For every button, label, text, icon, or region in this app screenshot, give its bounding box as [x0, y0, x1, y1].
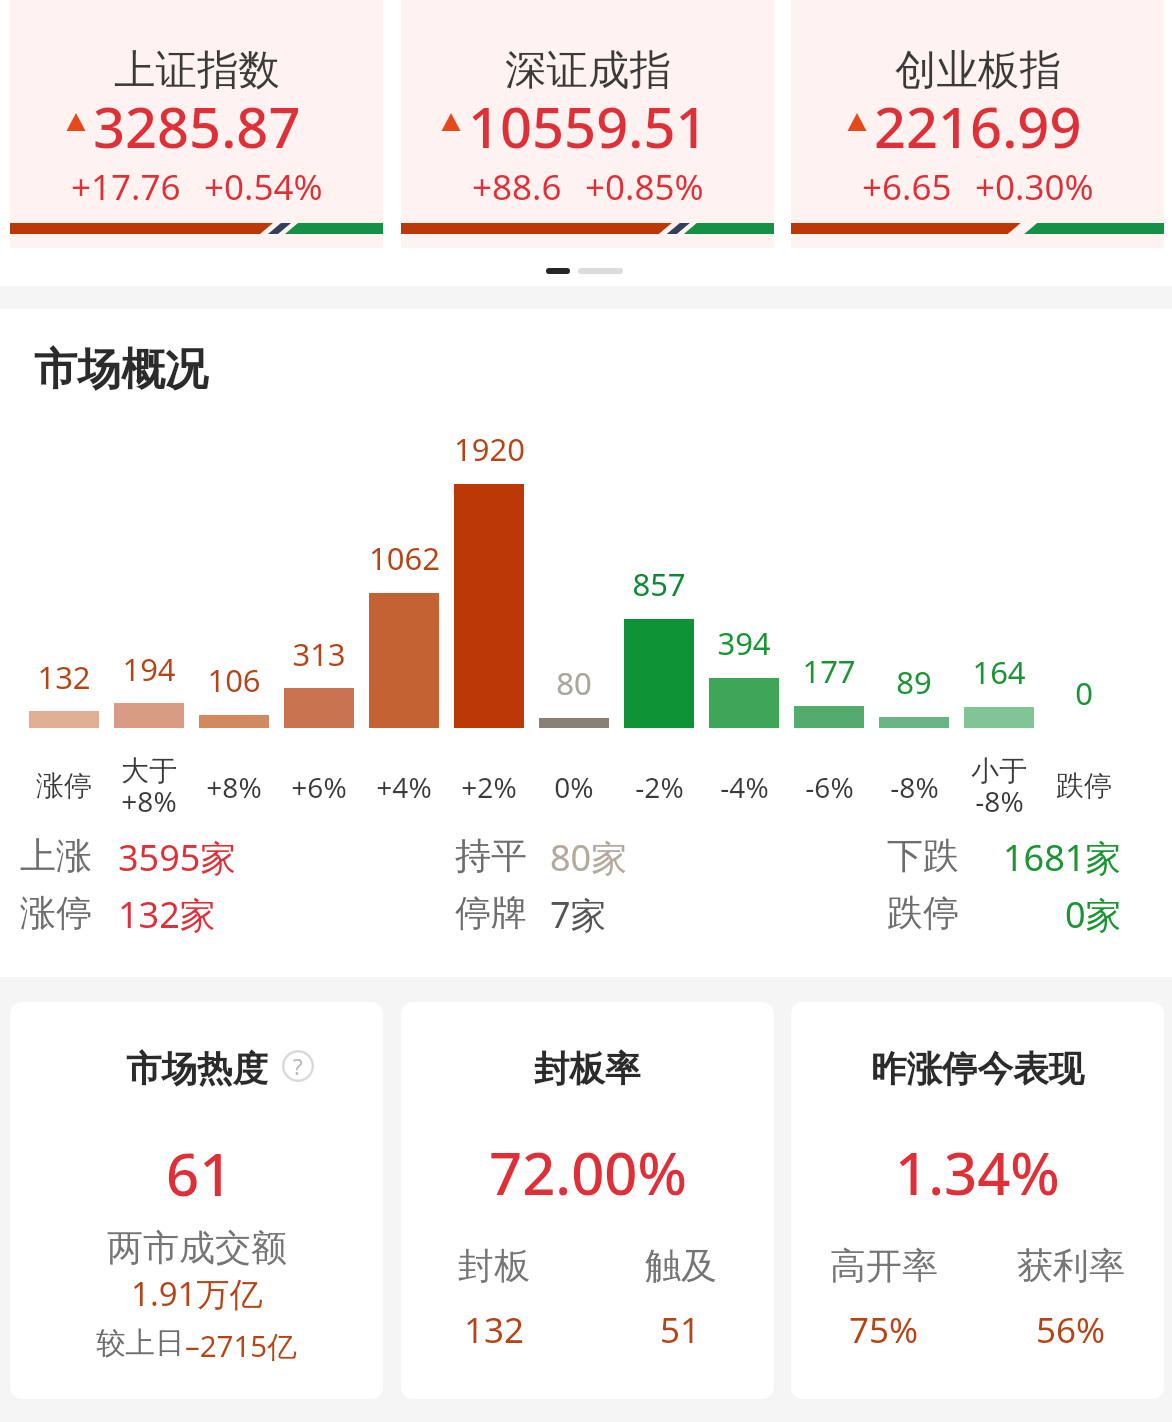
staticText: 1681家	[1003, 833, 1122, 882]
staticText: 1062	[369, 537, 440, 579]
button[interactable]: 市场热度	[10, 1002, 383, 1399]
staticText: 313	[292, 633, 346, 675]
staticText: +6%	[291, 768, 347, 806]
staticText: 10559.51	[468, 88, 708, 164]
staticText: 跌停	[1056, 768, 1112, 803]
staticText: 1.34%	[895, 1133, 1060, 1212]
staticText: 跌停	[887, 890, 959, 935]
staticText: 177	[802, 650, 856, 692]
staticText: +0.30%	[975, 163, 1094, 211]
staticText: 2216.99	[896, 88, 1104, 164]
staticText: 80家	[550, 833, 628, 882]
button[interactable]: 昨涨停今表现	[791, 1002, 1164, 1399]
staticText: 7家	[550, 890, 607, 939]
staticText: 194	[122, 648, 176, 690]
staticText: 164	[972, 651, 1026, 693]
staticText: 1.91万亿	[131, 1271, 263, 1316]
staticText: +0.54%	[204, 163, 323, 211]
staticText: 61	[166, 1134, 233, 1213]
staticText: 上涨	[20, 833, 92, 878]
staticText: 2216.99	[874, 88, 1082, 164]
staticText: 较上日	[96, 1325, 185, 1362]
staticText: 106	[207, 659, 261, 701]
staticText: 0%	[554, 768, 594, 806]
staticText: -8%	[890, 768, 939, 806]
staticText: 0	[1075, 672, 1093, 714]
staticText: 昨涨停今表现	[871, 1047, 1084, 1092]
staticText: 132	[464, 1306, 525, 1354]
button[interactable]: 封板率	[401, 1002, 774, 1399]
staticText: 857	[632, 563, 686, 605]
staticText: 涨停	[20, 890, 92, 935]
staticText: -4%	[720, 768, 769, 806]
staticText: 获利率	[1017, 1243, 1125, 1288]
staticText: 51	[660, 1306, 701, 1354]
staticText: 涨停	[36, 768, 92, 803]
staticText: +0.85%	[585, 163, 704, 211]
staticText: 1920	[454, 428, 525, 470]
button[interactable]: 上证指数	[10, 0, 383, 248]
staticText: +88.6	[472, 163, 562, 211]
staticText: 0家	[1065, 890, 1122, 939]
staticText: 75%	[849, 1306, 919, 1354]
staticText: 上证指数	[114, 44, 280, 96]
staticText: +6.65	[862, 163, 952, 211]
staticText: 132	[37, 656, 91, 698]
staticText: 小于	[971, 753, 1027, 788]
staticText: 大于	[121, 753, 177, 788]
staticText: 停牌	[455, 890, 527, 935]
staticText: 持平	[455, 833, 527, 878]
staticText: 3285.87	[93, 88, 301, 164]
staticText: +4%	[376, 768, 432, 806]
staticText: 市场热度	[126, 1047, 268, 1092]
staticText: 132家	[118, 890, 216, 939]
staticText: 80	[556, 662, 592, 704]
staticText: 市场概况	[34, 342, 208, 397]
staticText: 深证成指	[505, 44, 671, 96]
button[interactable]: 深证成指	[401, 0, 774, 248]
staticText: 触及	[645, 1243, 717, 1288]
staticText: 72.00%	[489, 1133, 687, 1212]
staticText: 高开率	[830, 1243, 938, 1288]
staticText: 3285.87	[115, 88, 323, 164]
staticText: +8%	[206, 768, 262, 806]
staticText: 10559.51	[490, 88, 730, 164]
staticText: -2%	[635, 768, 684, 806]
staticText: 89	[896, 661, 932, 703]
staticText: ?	[293, 1051, 303, 1081]
staticText: +8%	[121, 782, 177, 820]
staticText: 56%	[1036, 1306, 1106, 1354]
staticText: 3595家	[118, 833, 237, 882]
staticText: +2%	[461, 768, 517, 806]
button[interactable]: 帮助	[282, 1050, 314, 1082]
staticText: -6%	[805, 768, 854, 806]
staticText: 两市成交额	[107, 1225, 287, 1270]
staticText: 封板率	[534, 1047, 641, 1092]
staticText: 下跌	[887, 833, 959, 878]
button[interactable]: 创业板指	[791, 0, 1164, 248]
staticText: –2715亿	[185, 1325, 297, 1365]
staticText: +17.76	[71, 163, 181, 211]
staticText: 394	[717, 622, 771, 664]
staticText: -8%	[975, 782, 1024, 820]
staticText: 封板	[458, 1243, 530, 1288]
staticText: 创业板指	[895, 44, 1061, 96]
